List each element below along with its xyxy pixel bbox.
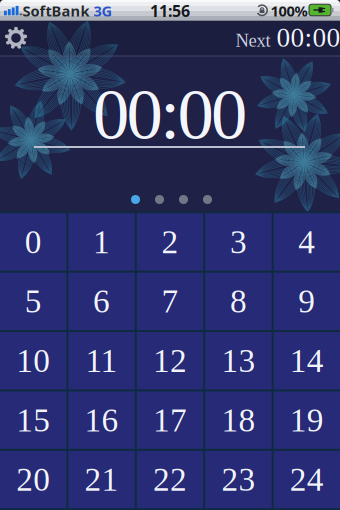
staticText: 17: [153, 402, 187, 439]
staticText: 23: [221, 461, 255, 498]
staticText: 5: [25, 283, 42, 320]
button[interactable]: 7: [137, 273, 203, 330]
staticText: 20: [16, 461, 50, 498]
staticText: 10: [16, 342, 50, 379]
button[interactable]: 12: [137, 332, 203, 389]
button[interactable]: 19: [274, 391, 340, 449]
button[interactable]: 16: [68, 391, 135, 449]
staticText: 16: [85, 402, 119, 439]
staticText: 12: [153, 342, 187, 379]
staticText: 22: [153, 461, 187, 498]
staticText: 9: [298, 283, 315, 320]
button[interactable]: Settings: [0, 22, 32, 54]
staticText: 1: [93, 223, 110, 260]
staticText: 6: [93, 283, 110, 320]
button[interactable]: Page 3: [179, 195, 188, 204]
staticText: 18: [221, 402, 255, 439]
button[interactable]: 23: [205, 451, 272, 508]
staticText: 3G: [93, 1, 112, 21]
button[interactable]: 0: [0, 213, 66, 271]
staticText: 24: [290, 461, 324, 498]
staticText: 21: [85, 461, 119, 498]
button[interactable]: 14: [274, 332, 340, 389]
button[interactable]: 21: [68, 451, 135, 508]
staticText: 100%: [270, 1, 307, 21]
button[interactable]: Page 1: [131, 195, 140, 204]
staticText: 2: [161, 223, 178, 260]
button[interactable]: 17: [137, 391, 203, 449]
staticText: 0: [25, 223, 42, 260]
staticText: 14: [290, 342, 324, 379]
button[interactable]: 2: [137, 213, 203, 271]
button[interactable]: 3: [205, 213, 272, 271]
button[interactable]: 20: [0, 451, 66, 508]
button[interactable]: 1: [68, 213, 135, 271]
button[interactable]: 5: [0, 273, 66, 330]
staticText: 11:56: [150, 0, 190, 21]
button[interactable]: 15: [0, 391, 66, 449]
staticText: Next: [235, 30, 270, 51]
staticText: 11: [86, 342, 118, 379]
button[interactable]: 13: [205, 332, 272, 389]
button[interactable]: 6: [68, 273, 135, 330]
button[interactable]: Page 2: [155, 195, 164, 204]
staticText: 13: [221, 342, 255, 379]
staticText: 3: [230, 223, 247, 260]
staticText: 19: [290, 402, 324, 439]
staticText: SoftBank: [22, 1, 89, 21]
staticText: 8: [230, 283, 247, 320]
staticText: 4: [298, 223, 315, 260]
staticText: 15: [16, 402, 50, 439]
button[interactable]: 22: [137, 451, 203, 508]
button[interactable]: 10: [0, 332, 66, 389]
button[interactable]: 18: [205, 391, 272, 449]
button[interactable]: 24: [274, 451, 340, 508]
button[interactable]: 9: [274, 273, 340, 330]
button[interactable]: 8: [205, 273, 272, 330]
button[interactable]: 11: [68, 332, 135, 389]
staticText: 7: [161, 283, 178, 320]
button[interactable]: Page 4: [203, 195, 212, 204]
button[interactable]: 4: [274, 213, 340, 271]
staticText: 00:00: [276, 22, 340, 53]
staticText: 00:00: [93, 74, 247, 154]
